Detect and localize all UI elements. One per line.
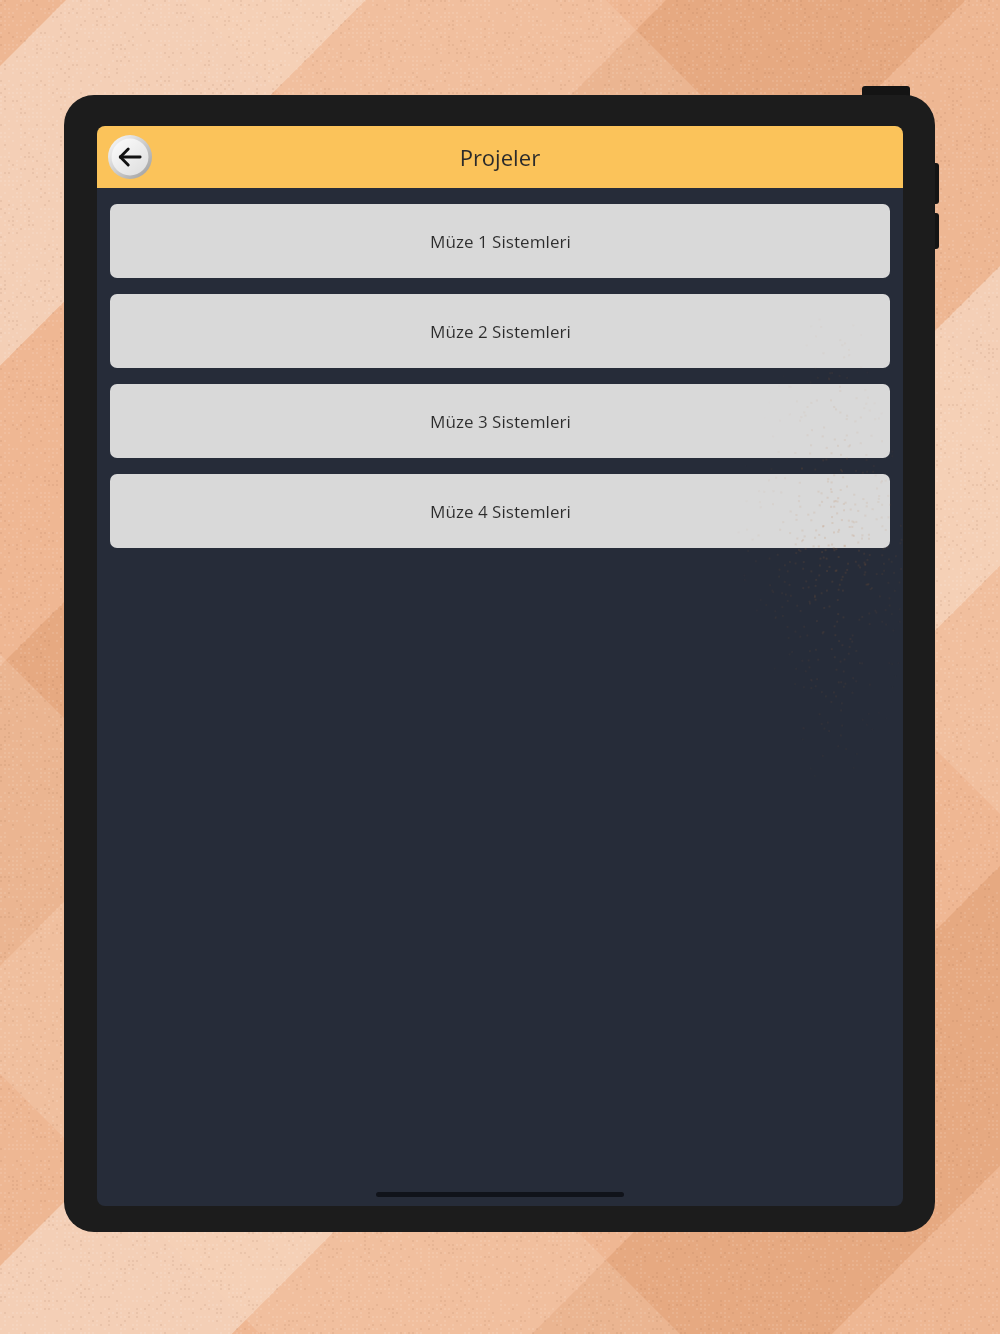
button[interactable]: Müze 4 Sistemleri [110, 474, 890, 548]
button[interactable]: Müze 1 Sistemleri [110, 204, 890, 278]
button[interactable]: Müze 3 Sistemleri [110, 384, 890, 458]
button[interactable]: Müze 2 Sistemleri [110, 294, 890, 368]
staticText: Müze 2 Sistemleri [430, 320, 571, 343]
staticText: Müze 1 Sistemleri [430, 230, 571, 253]
staticText: Projeler [97, 142, 903, 172]
staticText: Müze 3 Sistemleri [430, 410, 571, 433]
button[interactable]: Back [108, 135, 152, 179]
staticText: Müze 4 Sistemleri [430, 500, 571, 523]
